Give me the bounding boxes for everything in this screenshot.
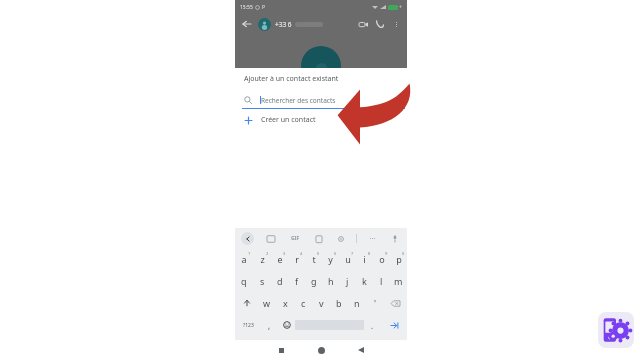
staticText: a: [241, 253, 247, 265]
staticText: x: [283, 297, 288, 309]
button[interactable]: y: [322, 248, 339, 270]
staticText: 5: [317, 251, 320, 256]
staticText: r: [295, 253, 299, 265]
staticText: ': [374, 297, 377, 309]
staticText: f: [295, 275, 299, 287]
staticText: y: [328, 253, 333, 265]
button[interactable]: h: [322, 270, 339, 292]
button[interactable]: Expand toolbar: [241, 232, 254, 245]
button[interactable]: Back: [240, 17, 254, 31]
staticText: 6: [334, 251, 337, 256]
button[interactable]: Backspace: [384, 292, 407, 314]
button[interactable]: r: [288, 248, 305, 270]
button[interactable]: l: [373, 270, 390, 292]
button[interactable]: Créer un contact: [235, 109, 407, 131]
staticText: d: [277, 275, 283, 287]
staticText: +: [399, 4, 402, 11]
staticText: e: [277, 253, 283, 265]
button[interactable]: e: [271, 248, 288, 270]
staticText: u: [345, 253, 351, 265]
button[interactable]: .: [364, 314, 381, 336]
button[interactable]: ,: [261, 314, 278, 336]
staticText: i: [363, 253, 366, 265]
staticText: 2: [266, 251, 269, 256]
button[interactable]: c: [294, 292, 312, 314]
button[interactable]: Next field: [381, 314, 407, 336]
staticText: 1: [248, 251, 251, 256]
button[interactable]: f: [288, 270, 305, 292]
button[interactable]: Shift: [235, 292, 258, 314]
staticText: g: [311, 275, 317, 287]
button[interactable]: z: [253, 248, 271, 270]
button[interactable]: x: [276, 292, 294, 314]
staticText: 8: [368, 251, 371, 256]
staticText: 7: [351, 251, 354, 256]
staticText: j: [346, 275, 349, 287]
staticText: m: [394, 275, 403, 287]
button[interactable]: More: [366, 232, 379, 245]
button[interactable]: n: [348, 292, 366, 314]
button[interactable]: Recents: [272, 341, 290, 359]
button[interactable]: t: [305, 248, 322, 270]
staticText: 3: [283, 251, 286, 256]
button[interactable]: Video call: [356, 17, 370, 31]
button[interactable]: Call: [373, 17, 387, 31]
button[interactable]: Emoji: [278, 314, 295, 336]
button[interactable]: u: [339, 248, 356, 270]
button[interactable]: w: [258, 292, 276, 314]
staticText: 9: [385, 251, 388, 256]
staticText: z: [260, 253, 265, 265]
button[interactable]: b: [330, 292, 348, 314]
button[interactable]: Rechercher des contacts: [235, 92, 407, 108]
button[interactable]: More options: [390, 18, 402, 30]
staticText: ,: [268, 320, 271, 331]
button[interactable]: a: [235, 248, 253, 270]
button[interactable]: Settings: [334, 232, 347, 245]
staticText: 15:55: [240, 4, 253, 11]
staticText: s: [260, 275, 265, 287]
button[interactable]: v: [312, 292, 330, 314]
staticText: P: [262, 4, 266, 11]
button[interactable]: GIF: [287, 232, 303, 245]
button[interactable]: Back: [352, 341, 370, 359]
staticText: b: [336, 297, 342, 309]
button[interactable]: k: [356, 270, 373, 292]
staticText: p: [396, 253, 402, 265]
staticText: h: [328, 275, 334, 287]
button[interactable]: App logo: [598, 312, 634, 348]
button[interactable]: Home: [312, 341, 330, 359]
staticText: .: [371, 320, 374, 331]
staticText: o: [379, 253, 385, 265]
button[interactable]: ?123: [235, 314, 261, 336]
staticText: c: [301, 297, 306, 309]
staticText: Rechercher des contacts: [261, 96, 336, 105]
staticText: ?123: [243, 322, 254, 329]
staticText: 0: [402, 251, 405, 256]
button[interactable]: p: [390, 248, 407, 270]
staticText: n: [354, 297, 360, 309]
staticText: v: [319, 297, 324, 309]
button[interactable]: d: [271, 270, 288, 292]
staticText: Créer un contact: [261, 115, 316, 125]
staticText: k: [362, 275, 367, 287]
staticText: 4: [300, 251, 303, 256]
button[interactable]: i: [356, 248, 373, 270]
button[interactable]: m: [390, 270, 407, 292]
button[interactable]: g: [305, 270, 322, 292]
staticText: +33 6: [275, 20, 292, 29]
button[interactable]: Voice input: [388, 232, 401, 245]
button[interactable]: o: [373, 248, 390, 270]
button[interactable]: j: [339, 270, 356, 292]
staticText: t: [312, 253, 316, 265]
staticText: q: [241, 275, 247, 287]
button[interactable]: ': [366, 292, 384, 314]
button[interactable]: s: [253, 270, 271, 292]
staticText: w: [263, 297, 271, 309]
staticText: GIF: [291, 235, 300, 242]
staticText: Ajouter à un contact existant: [244, 74, 339, 84]
button[interactable]: Stickers: [264, 232, 277, 245]
button[interactable]: q: [235, 270, 253, 292]
staticText: l: [380, 275, 383, 287]
button[interactable]: Clipboard: [312, 232, 325, 245]
